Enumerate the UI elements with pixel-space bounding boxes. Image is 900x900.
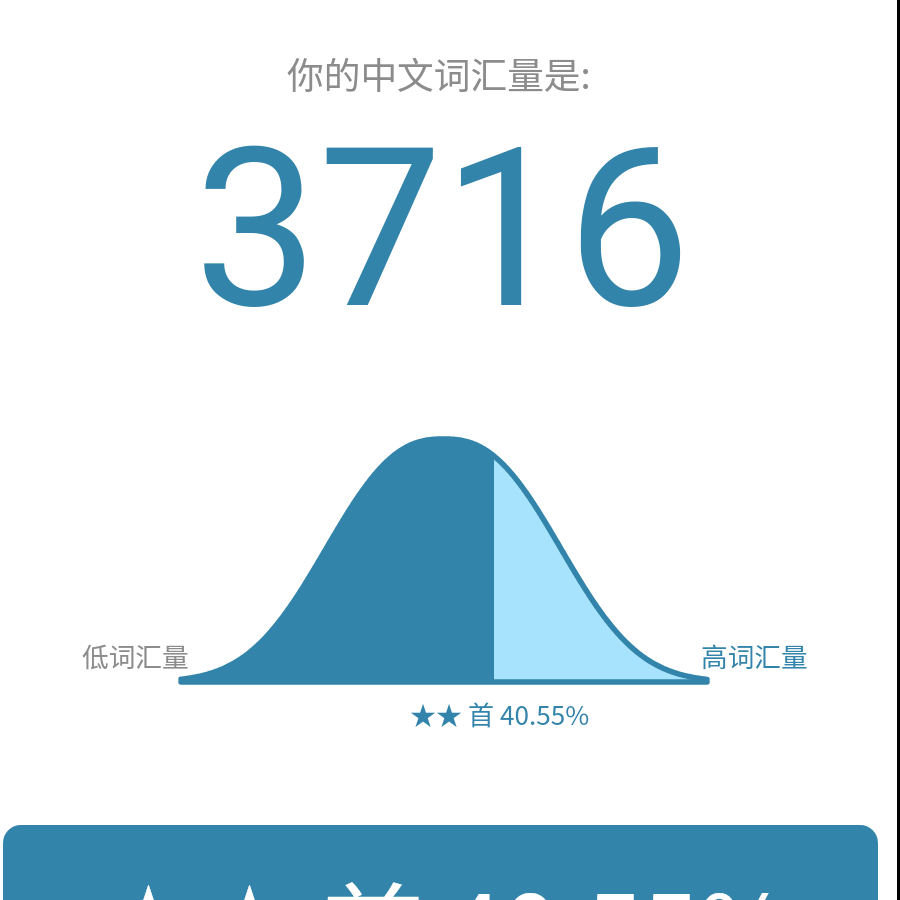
staticText: ★★ 首 40.55% <box>410 695 590 733</box>
staticText: 高词汇量 <box>701 636 808 675</box>
staticText: ★★ 首 40.55% <box>98 851 792 900</box>
staticText: 你的中文词汇量是: <box>287 46 591 99</box>
staticText: 低词汇量 <box>82 636 189 675</box>
button[interactable]: ★★ 首 40.55% <box>3 825 878 900</box>
staticText: 3716 <box>194 100 691 359</box>
